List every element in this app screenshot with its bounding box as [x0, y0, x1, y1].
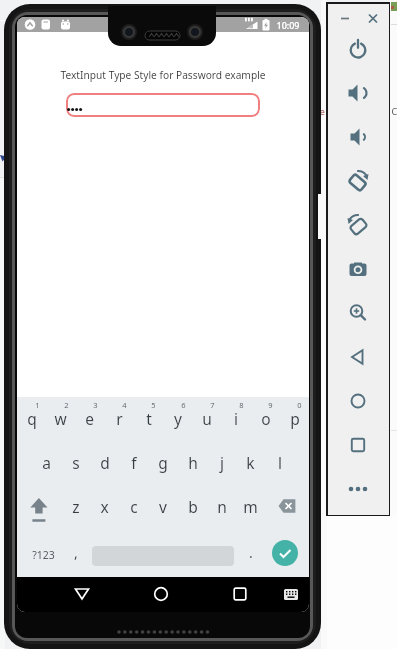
- button[interactable]: ?123: [23, 532, 63, 577]
- button[interactable]: q: [17, 398, 46, 438]
- staticText: k: [246, 452, 255, 473]
- staticText: e: [85, 408, 94, 429]
- staticText: 3: [93, 400, 98, 410]
- button[interactable]: [275, 577, 307, 612]
- button[interactable]: [339, 207, 377, 243]
- button[interactable]: [265, 487, 309, 532]
- staticText: 10:09: [276, 19, 300, 31]
- staticText: ?123: [32, 548, 55, 562]
- button[interactable]: h: [178, 440, 207, 485]
- button[interactable]: o: [251, 398, 280, 438]
- button[interactable]: r: [105, 398, 134, 438]
- staticText: 4: [122, 400, 127, 410]
- staticText: 5: [151, 400, 156, 410]
- staticText: .: [249, 543, 253, 562]
- button[interactable]: d: [90, 440, 119, 485]
- button[interactable]: [339, 295, 377, 331]
- button[interactable]: m: [236, 484, 265, 529]
- staticText: j: [220, 452, 224, 473]
- staticText: u: [202, 408, 212, 429]
- staticText: c: [130, 496, 138, 517]
- button[interactable]: j: [207, 440, 236, 485]
- button[interactable]: [339, 427, 377, 463]
- button[interactable]: k: [236, 440, 265, 485]
- button[interactable]: u: [192, 398, 221, 438]
- staticText: x: [100, 496, 109, 517]
- button[interactable]: [339, 339, 377, 375]
- button[interactable]: s: [61, 440, 90, 485]
- staticText: n: [217, 496, 227, 517]
- button[interactable]: l: [265, 440, 294, 485]
- button[interactable]: [339, 31, 377, 67]
- button[interactable]: ,: [61, 530, 90, 575]
- button[interactable]: [364, 10, 382, 26]
- staticText: r: [116, 408, 123, 429]
- staticText: ,: [74, 543, 78, 562]
- staticText: t: [146, 408, 152, 429]
- staticText: q: [27, 408, 37, 429]
- button[interactable]: y: [163, 398, 192, 438]
- button[interactable]: [336, 10, 354, 26]
- button[interactable]: c: [119, 484, 148, 529]
- button[interactable]: [339, 251, 377, 287]
- button[interactable]: v: [148, 484, 177, 529]
- staticText: 9: [268, 400, 273, 410]
- staticText: l: [278, 452, 282, 473]
- button[interactable]: f: [119, 440, 148, 485]
- button[interactable]: [339, 119, 377, 155]
- staticText: v: [159, 496, 167, 517]
- staticText: o: [261, 408, 271, 429]
- staticText: g: [158, 452, 168, 473]
- staticText: 6: [181, 400, 186, 410]
- staticText: d: [100, 452, 110, 473]
- button[interactable]: [339, 471, 377, 507]
- staticText: m: [243, 496, 258, 517]
- button[interactable]: p: [280, 398, 309, 438]
- staticText: s: [72, 452, 80, 473]
- staticText: 8: [239, 400, 244, 410]
- button[interactable]: g: [148, 440, 177, 485]
- button[interactable]: [272, 540, 298, 566]
- button[interactable]: [339, 163, 377, 199]
- staticText: 0: [297, 400, 302, 410]
- button[interactable]: w: [46, 398, 75, 438]
- staticText: 7: [210, 400, 215, 410]
- staticText: y: [174, 408, 182, 429]
- button[interactable]: [339, 75, 377, 111]
- staticText: 1: [35, 400, 40, 410]
- button[interactable]: [64, 577, 100, 612]
- staticText: w: [54, 408, 67, 429]
- button[interactable]: n: [207, 484, 236, 529]
- button[interactable]: i: [221, 398, 250, 438]
- button[interactable]: t: [134, 398, 163, 438]
- staticText: h: [188, 452, 198, 473]
- button[interactable]: a: [32, 440, 61, 485]
- staticText: re: [316, 105, 325, 117]
- staticText: TextInput Type Style for Password exampl…: [60, 68, 266, 82]
- button[interactable]: b: [178, 484, 207, 529]
- staticText: Cl: [391, 105, 397, 117]
- button[interactable]: [66, 93, 260, 117]
- button[interactable]: z: [61, 484, 90, 529]
- staticText: 2: [64, 400, 69, 410]
- staticText: b: [188, 496, 198, 517]
- button[interactable]: e: [75, 398, 104, 438]
- staticText: f: [131, 452, 137, 473]
- button[interactable]: [17, 487, 61, 532]
- button[interactable]: [339, 383, 377, 419]
- button[interactable]: .: [236, 530, 265, 575]
- staticText: i: [234, 408, 238, 429]
- button[interactable]: x: [90, 484, 119, 529]
- staticText: a: [42, 452, 51, 473]
- staticText: p: [290, 408, 300, 429]
- button[interactable]: [143, 577, 179, 612]
- button[interactable]: [222, 577, 258, 612]
- staticText: z: [72, 496, 80, 517]
